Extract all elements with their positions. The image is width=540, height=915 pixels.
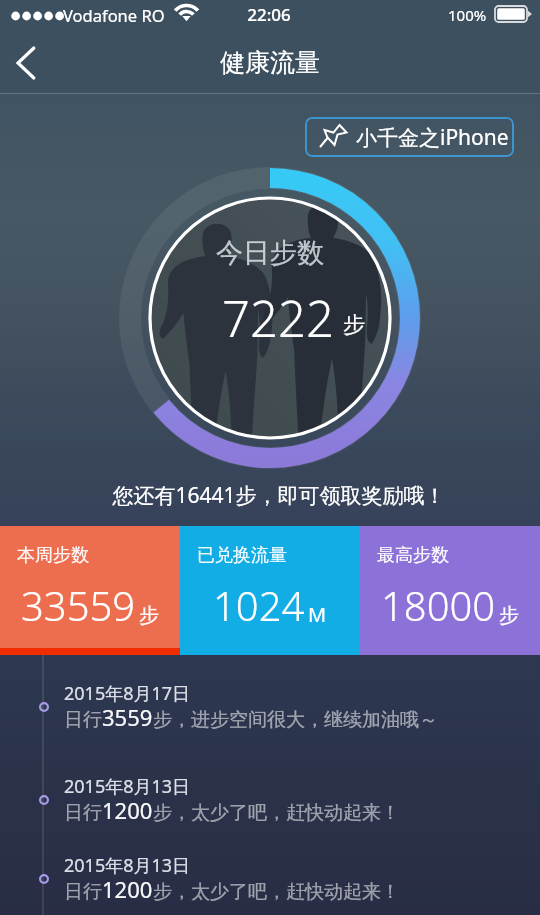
staticText: 步，太少了吧，赶快动起来！ [153,801,400,825]
staticText: Vodafone RO [63,4,165,26]
button[interactable]: 小千金之iPhone [305,117,514,157]
staticText: 7222 [222,285,334,352]
staticText: 100% [448,5,487,25]
button[interactable]: 2015年8月13日 [0,827,540,909]
staticText: 2015年8月17日 [64,681,191,706]
staticText: 1200 [102,795,153,825]
staticText: 步，进步空间很大，继续加油哦～ [153,708,438,732]
staticText: 日行 [64,801,102,825]
staticText: 2015年8月13日 [64,853,191,878]
staticText: 本周步数 [17,544,89,567]
staticText: 已兑换流量 [197,544,287,567]
staticText: M [308,601,327,628]
staticText: 步 [343,311,365,339]
staticText: 18000 [381,578,496,632]
button[interactable]: Back [0,35,56,91]
staticText: 日行 [64,880,102,904]
button[interactable]: 2015年8月13日 [0,748,540,830]
staticText: 日行 [64,708,102,732]
staticText: 健康流量 [220,47,320,78]
button[interactable]: 最高步数 [360,526,540,655]
staticText: 步 [139,603,159,628]
staticText: 步，太少了吧，赶快动起来！ [153,880,400,904]
staticText: 最高步数 [377,544,449,567]
staticText: 1200 [102,874,153,904]
button[interactable]: 已兑换流量 [180,526,360,655]
staticText: 33559 [21,578,136,632]
staticText: 1024 [213,578,305,632]
staticText: 22:06 [0,3,539,26]
button[interactable]: 本周步数 [0,526,180,655]
staticText: 小千金之iPhone [356,123,509,152]
staticText: 步 [499,603,519,628]
staticText: 今日步数 [110,236,430,270]
staticText: 您还有16441步，即可领取奖励哦！ [9,481,540,510]
staticText: 3559 [102,702,153,732]
button[interactable]: 2015年8月17日 [0,655,540,737]
staticText: 2015年8月13日 [64,774,191,799]
